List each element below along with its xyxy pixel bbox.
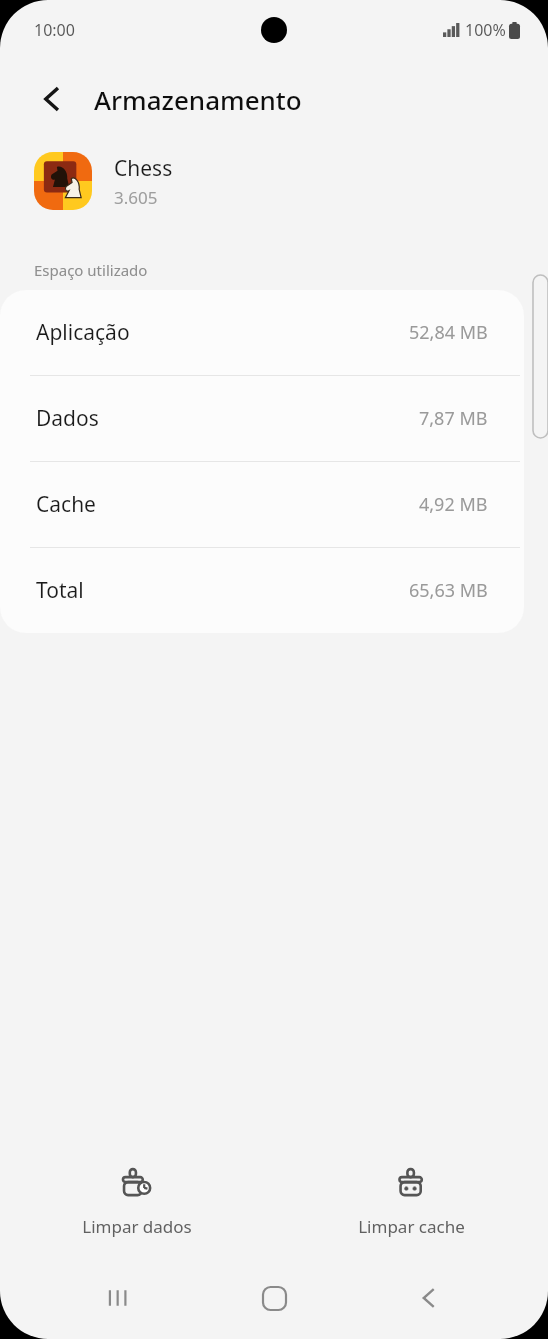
staticText: Limpar dados (82, 1215, 192, 1238)
button[interactable]: Aplicação (0, 290, 524, 376)
staticText: 100% (465, 19, 506, 41)
staticText: Chess (114, 154, 173, 183)
staticText: Cache (36, 490, 96, 519)
staticText: Aplicação (36, 318, 130, 347)
staticText: Total (36, 576, 84, 605)
button[interactable]: Limpar dados (0, 1159, 274, 1246)
button[interactable]: Home (239, 1263, 309, 1333)
button[interactable]: Dados (0, 376, 524, 462)
staticText: Armazenamento (94, 82, 302, 117)
button[interactable]: Chess (0, 138, 548, 224)
button[interactable]: Total (0, 548, 524, 633)
button[interactable]: Recents (85, 1263, 155, 1333)
staticText: 52,84 MB (409, 320, 488, 345)
staticText: Limpar cache (358, 1215, 465, 1238)
button[interactable]: Back (394, 1263, 464, 1333)
button[interactable]: Cache (0, 462, 524, 548)
button[interactable]: Back (28, 75, 76, 123)
staticText: 65,63 MB (409, 578, 488, 603)
staticText: Espaço utilizado (34, 260, 148, 280)
staticText: 7,87 MB (419, 406, 488, 431)
staticText: 3.605 (114, 186, 158, 209)
staticText: 10:00 (34, 19, 75, 41)
staticText: 4,92 MB (419, 492, 488, 517)
staticText: Dados (36, 404, 99, 433)
button[interactable]: Limpar cache (274, 1159, 548, 1246)
